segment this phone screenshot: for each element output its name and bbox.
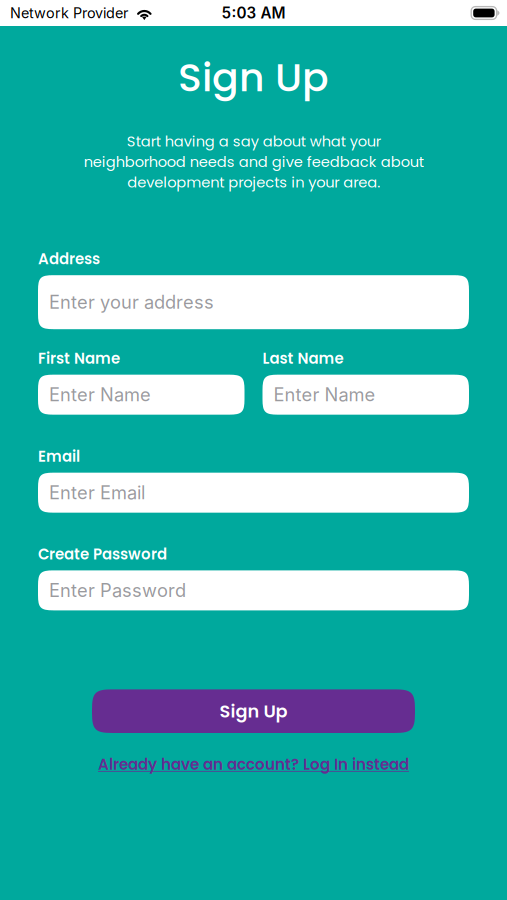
staticText: Last Name [262,348,343,369]
staticText: Enter Password [49,579,186,601]
staticText: Address [38,248,100,269]
staticText: Enter Email [49,482,145,504]
staticText: Sign Up [219,699,287,724]
button[interactable]: Enter your address [38,275,469,329]
staticText: Enter your address [49,291,214,313]
button[interactable]: Enter Name [38,375,244,415]
staticText: First Name [38,348,120,369]
staticText: Already have an account? Log In instead [98,754,409,775]
button[interactable]: Sign Up [92,689,415,733]
staticText: Sign Up [178,50,329,105]
staticText: Enter Name [49,384,151,406]
staticText: Create Password [38,544,167,565]
staticText: 5:03 AM [221,4,285,22]
button[interactable]: Enter Email [38,473,469,513]
staticText: Start having a say about what your neigh… [83,131,423,193]
staticText: Network Provider [10,4,128,22]
staticText: Email [38,446,80,467]
button[interactable]: Enter Password [38,570,469,610]
button[interactable]: Enter Name [262,375,469,415]
staticText: Enter Name [273,384,375,406]
button[interactable]: Already have an account? Log In instead [0,733,507,775]
